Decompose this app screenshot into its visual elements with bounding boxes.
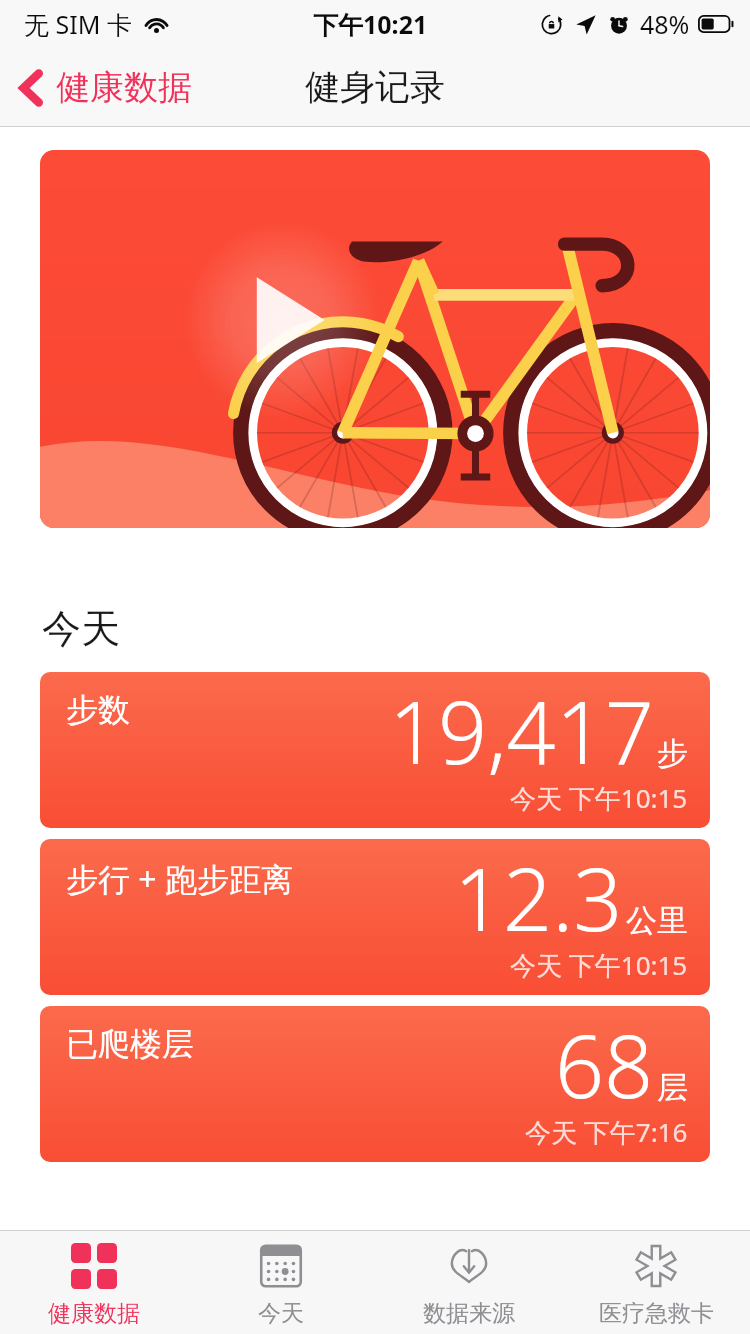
staticText: 无 SIM 卡 bbox=[24, 7, 132, 41]
button[interactable]: 数据来源 bbox=[376, 1232, 562, 1334]
button[interactable]: 返回 健康数据 bbox=[0, 56, 208, 119]
staticText: 医疗急救卡 bbox=[599, 1299, 714, 1328]
staticText: 68 bbox=[555, 1006, 654, 1123]
other: 返回 健康数据 bbox=[18, 68, 43, 108]
staticText: 数据来源 bbox=[423, 1299, 515, 1328]
button[interactable]: 已爬楼层 bbox=[40, 1006, 710, 1162]
staticText: 19,417 bbox=[389, 672, 654, 789]
staticText: 公里 bbox=[626, 901, 688, 940]
staticText: 健康数据 bbox=[56, 66, 192, 109]
button[interactable]: 健康数据 bbox=[1, 1232, 187, 1334]
button[interactable]: 步行 + 跑步距离 bbox=[40, 839, 710, 995]
staticText: 步 bbox=[657, 734, 688, 773]
staticText: 步行 + 跑步距离 bbox=[66, 857, 293, 901]
button[interactable]: 医疗急救卡 bbox=[563, 1232, 749, 1334]
staticText: 今天 bbox=[42, 604, 120, 653]
button[interactable]: 步数 bbox=[40, 672, 710, 828]
staticText: 健身记录 bbox=[305, 65, 445, 109]
staticText: 健康数据 bbox=[48, 1299, 140, 1328]
staticText: 今天 下午7:16 bbox=[525, 1114, 688, 1150]
staticText: 今天 下午10:15 bbox=[510, 947, 688, 983]
staticText: 今天 bbox=[258, 1299, 304, 1328]
staticText: 步数 bbox=[66, 690, 130, 730]
staticText: 层 bbox=[657, 1068, 688, 1107]
staticText: 今天 下午10:15 bbox=[510, 780, 688, 816]
staticText: 已爬楼层 bbox=[66, 1024, 194, 1064]
button[interactable]: 今天 bbox=[188, 1232, 374, 1334]
button[interactable]: 播放健身视频 bbox=[40, 150, 710, 528]
staticText: 48% bbox=[640, 7, 690, 41]
staticText: 下午10:21 bbox=[313, 7, 428, 41]
staticText: 12.3 bbox=[454, 839, 623, 956]
